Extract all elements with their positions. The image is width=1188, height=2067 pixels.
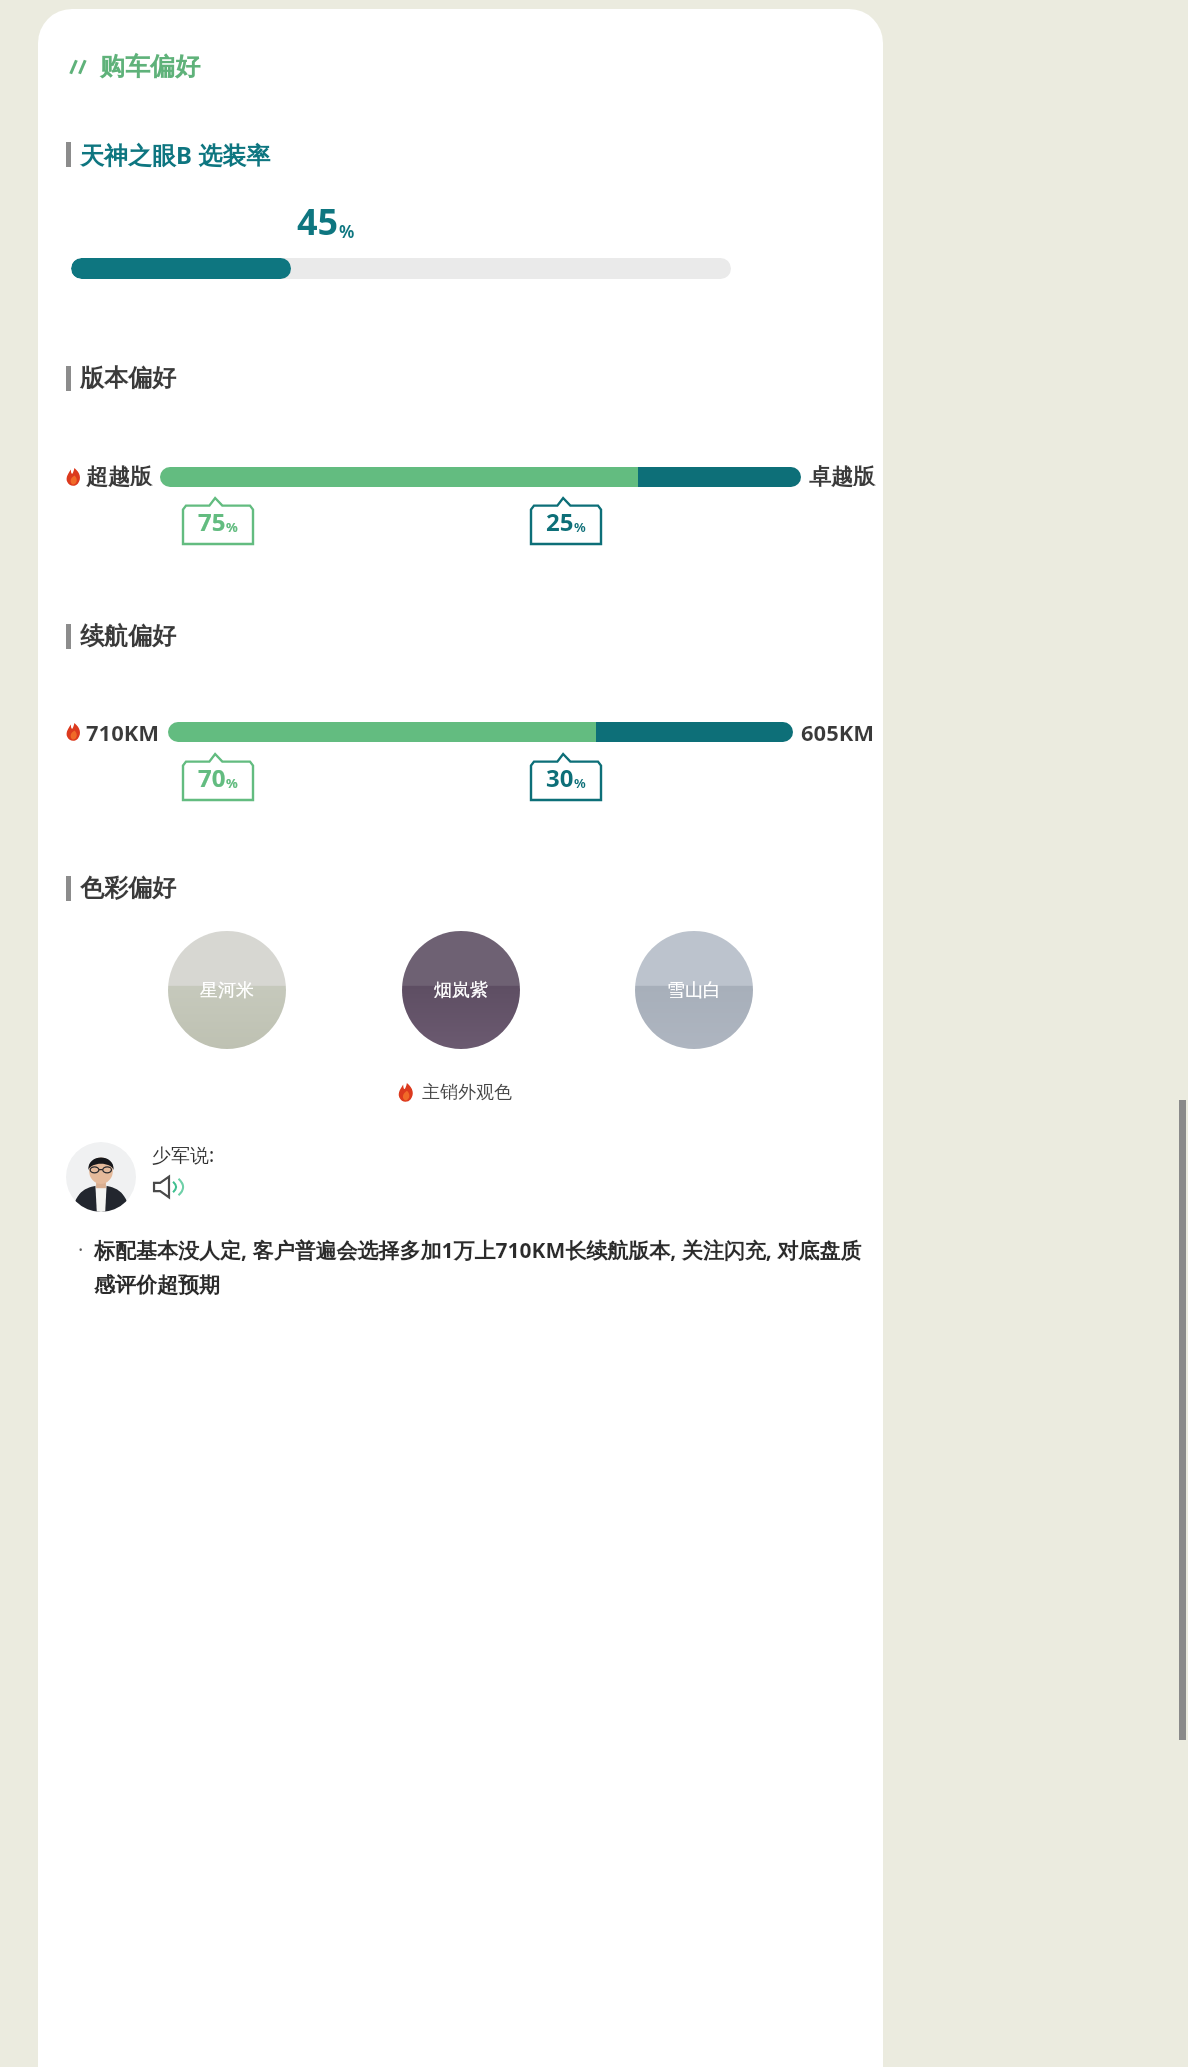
button[interactable] bbox=[71, 258, 731, 279]
staticText: 主销外观色 bbox=[422, 1081, 512, 1104]
button[interactable]: 25 bbox=[530, 497, 602, 545]
staticText: 超越版 bbox=[86, 463, 152, 491]
staticText: 版本偏好 bbox=[80, 363, 176, 393]
staticText: 雪山白 bbox=[667, 979, 721, 1002]
staticText: 25 bbox=[546, 505, 574, 538]
staticText: 标配基本没人定, 客户普遍会选择多加1万上710KM长续航版本, 关注闪充, 对… bbox=[94, 1236, 875, 1299]
staticText: % bbox=[226, 518, 238, 536]
staticText: 天神之眼B 选装率 bbox=[80, 138, 271, 171]
button[interactable]: 购车偏好 bbox=[66, 51, 200, 82]
staticText: % bbox=[574, 518, 586, 536]
staticText: 70 bbox=[198, 761, 226, 794]
staticText: % bbox=[574, 774, 586, 792]
button[interactable]: 星河米 bbox=[168, 931, 286, 1049]
staticText: 605KM bbox=[801, 717, 875, 747]
button[interactable] bbox=[160, 467, 801, 487]
button[interactable] bbox=[168, 722, 793, 742]
button[interactable]: Play audio bbox=[152, 1174, 186, 1200]
button[interactable]: 70 bbox=[182, 753, 254, 801]
staticText: % bbox=[339, 220, 355, 243]
staticText: 星河米 bbox=[200, 979, 254, 1002]
button[interactable]: Avatar bbox=[66, 1142, 215, 1212]
button[interactable]: 烟岚紫 bbox=[402, 931, 520, 1049]
button[interactable]: 雪山白 bbox=[635, 931, 753, 1049]
staticText: 续航偏好 bbox=[80, 621, 176, 651]
staticText: 45 bbox=[297, 197, 339, 246]
button[interactable]: 75 bbox=[182, 497, 254, 545]
staticText: 色彩偏好 bbox=[80, 873, 176, 903]
staticText: 710KM bbox=[86, 717, 160, 747]
staticText: % bbox=[226, 774, 238, 792]
staticText: 烟岚紫 bbox=[434, 979, 488, 1002]
staticText: 少军说: bbox=[152, 1142, 215, 1168]
staticText: 卓越版 bbox=[809, 463, 875, 491]
staticText: · bbox=[78, 1236, 84, 1263]
button[interactable]: 30 bbox=[530, 753, 602, 801]
staticText: 30 bbox=[546, 761, 574, 794]
staticText: 75 bbox=[198, 505, 226, 538]
other: Avatar bbox=[66, 1142, 136, 1212]
staticText: 购车偏好 bbox=[100, 51, 200, 82]
